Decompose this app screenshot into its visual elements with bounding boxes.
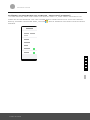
button[interactable]: Phone Link (10, 4, 31, 9)
staticText: Settings on Windows for Android - Micros… (8, 13, 71, 16)
button[interactable] (22, 44, 37, 47)
button[interactable] (22, 41, 37, 44)
button[interactable]: Section tab (84, 56, 88, 71)
staticText: • To see Settings, open the Phone Link a… (8, 15, 87, 24)
button[interactable] (22, 38, 37, 41)
button[interactable]: Toggle (22, 47, 37, 50)
button[interactable]: Toggle (22, 51, 37, 54)
staticText: Phone Link (17, 5, 31, 8)
staticText: User Guide (9, 115, 22, 118)
